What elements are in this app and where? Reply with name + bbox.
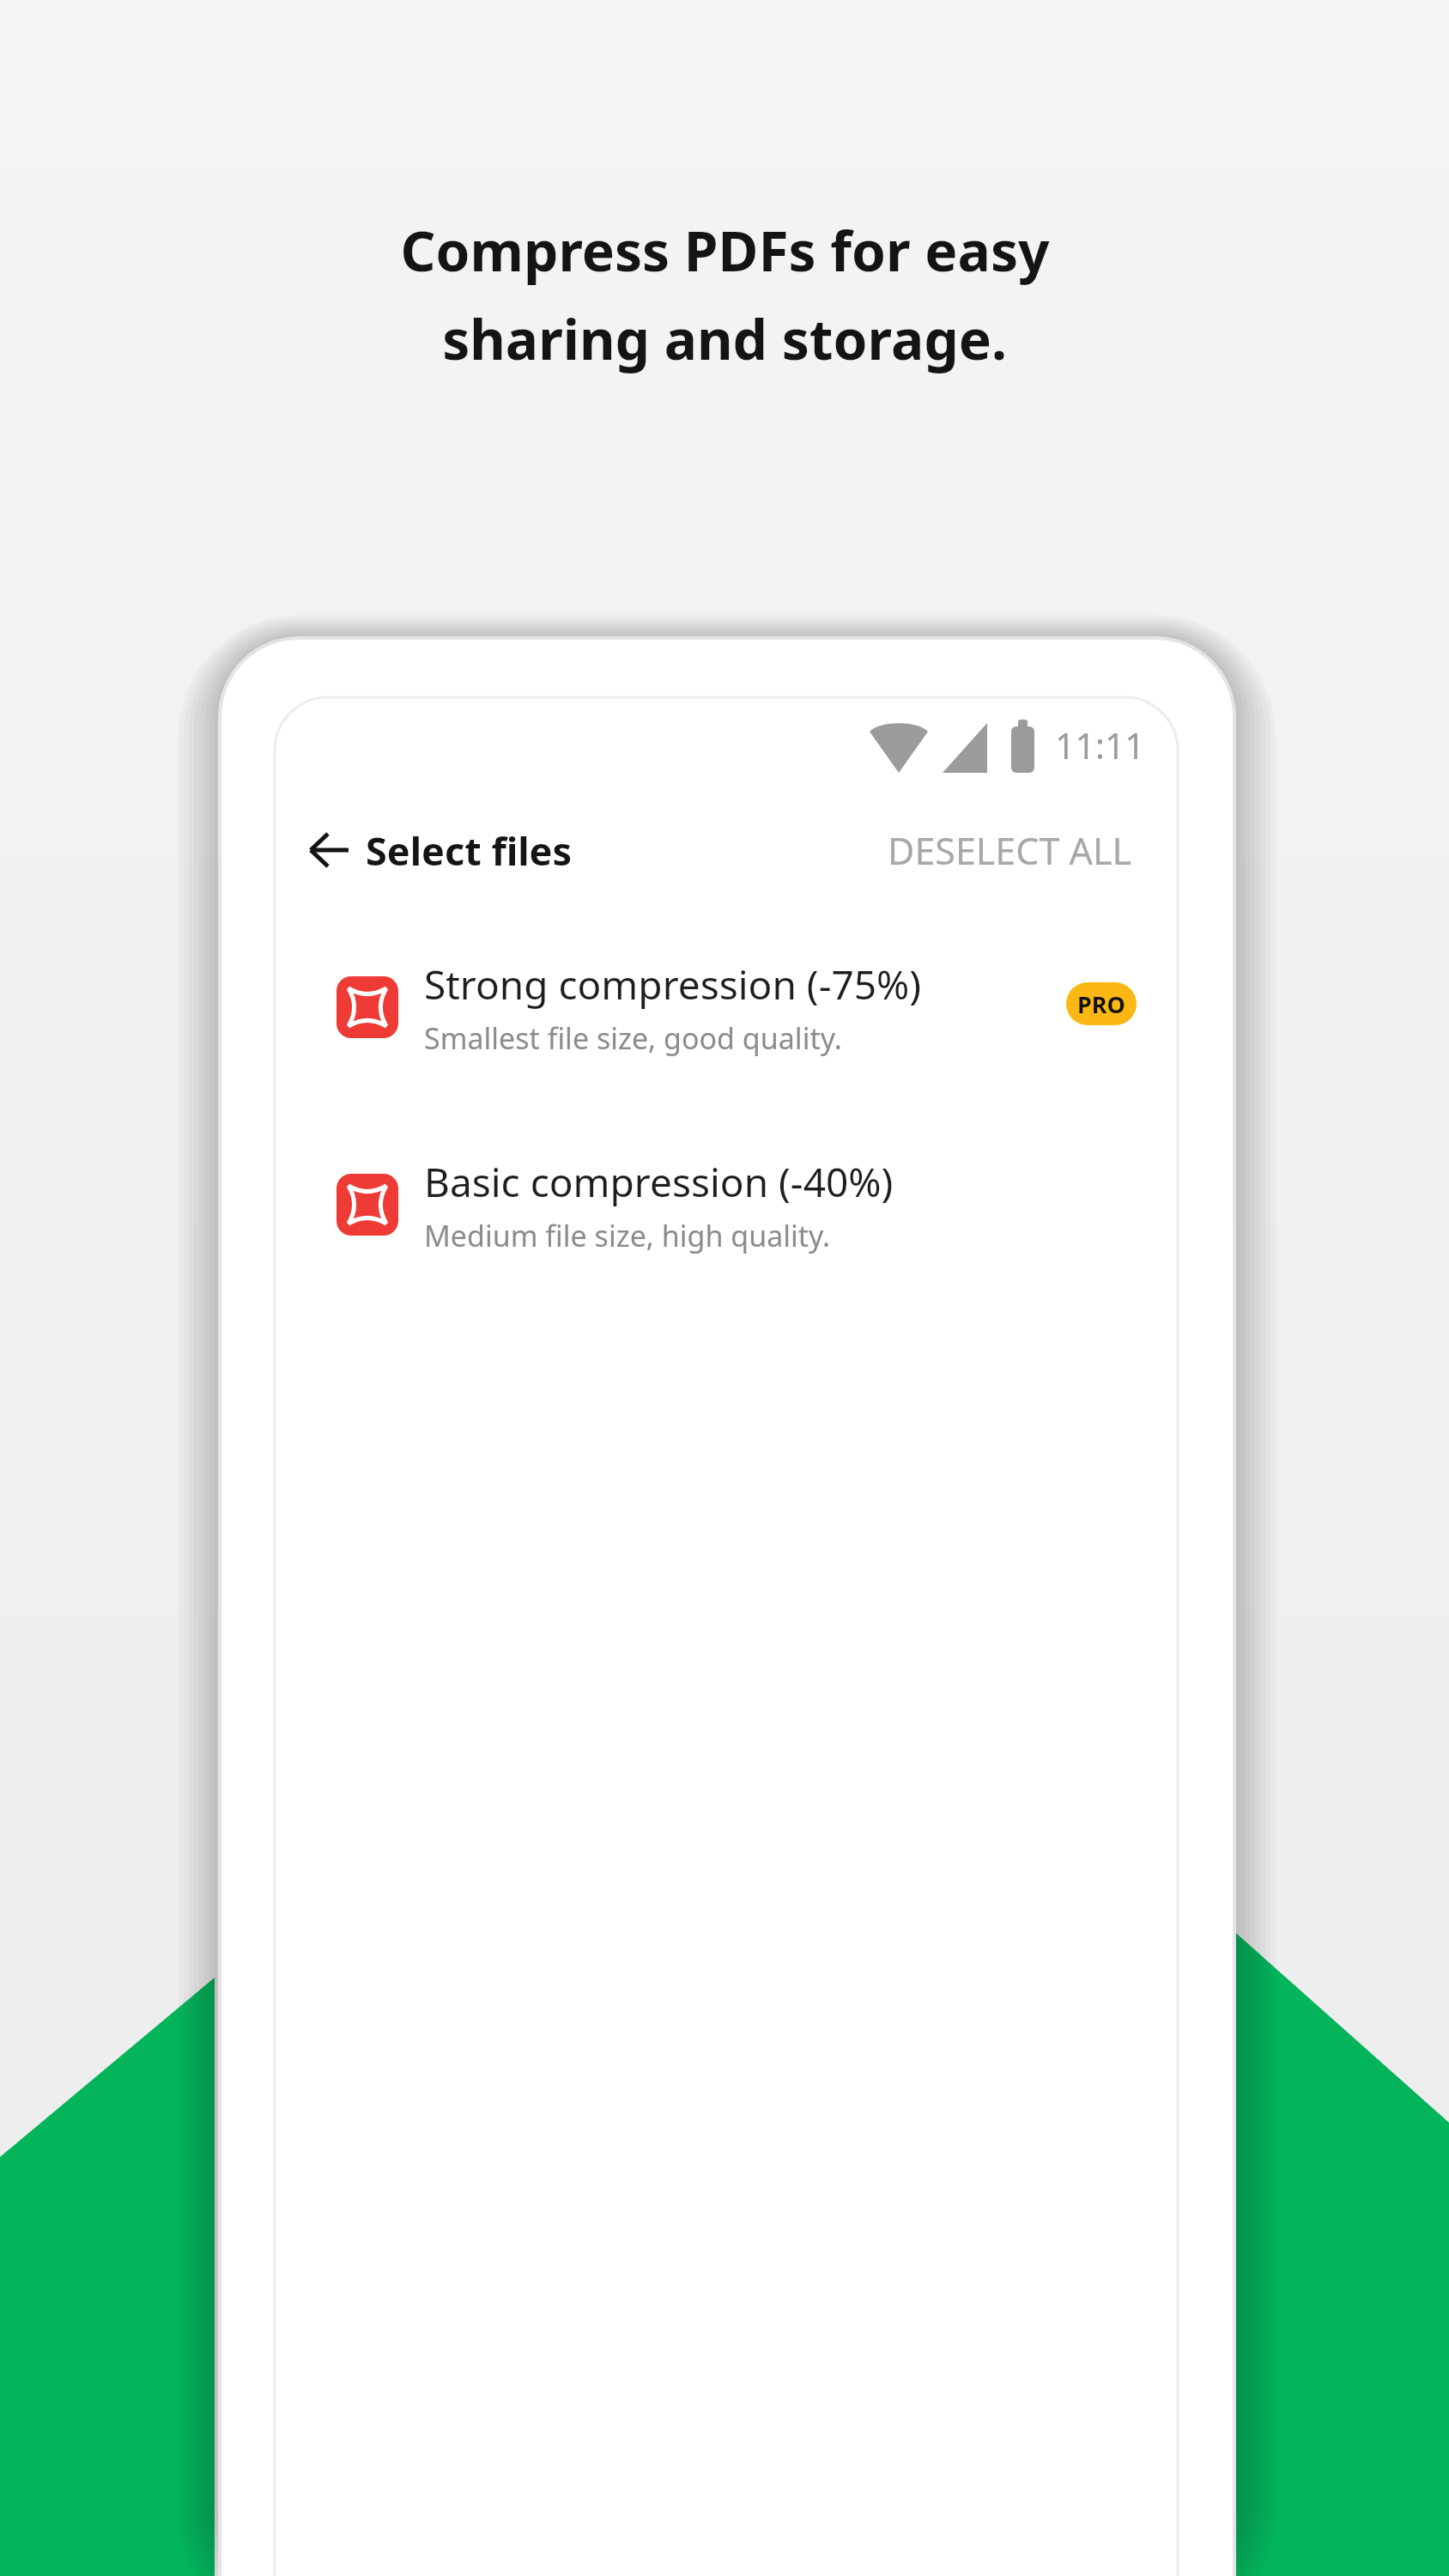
button[interactable]: DESELECT ALL: [877, 814, 1143, 886]
staticText: Select files: [366, 824, 573, 877]
staticText: Basic compression (-40%): [424, 1155, 894, 1209]
button[interactable]: Strong compression (-75%): [309, 943, 1150, 1072]
staticText: Smallest file size, good quality.: [424, 1018, 842, 1058]
staticText: sharing and storage.: [442, 301, 1007, 376]
staticText: PRO: [1077, 988, 1125, 1020]
staticText: Compress PDFs for easy: [400, 213, 1050, 288]
staticText: Medium file size, high quality.: [424, 1216, 831, 1255]
button[interactable]: Back: [299, 814, 581, 886]
other: Back: [307, 829, 350, 872]
staticText: Strong compression (-75%): [424, 957, 922, 1012]
staticText: 11:11: [1055, 721, 1145, 769]
button[interactable]: PRO: [1066, 982, 1137, 1025]
button[interactable]: Basic compression (-40%): [309, 1140, 1150, 1269]
staticText: DESELECT ALL: [888, 825, 1132, 876]
